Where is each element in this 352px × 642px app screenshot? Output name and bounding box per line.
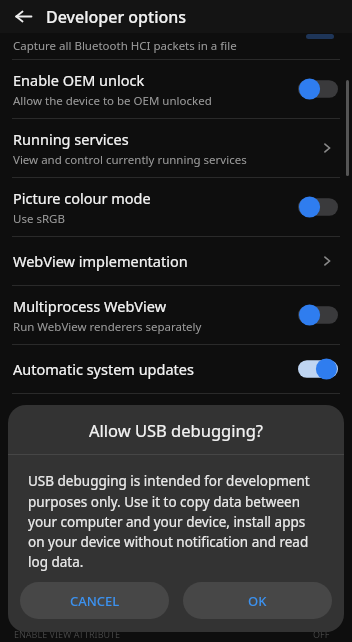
staticText: OFF (313, 628, 330, 640)
staticText: Capture all Bluetooth HCI packets in a f… (13, 38, 237, 54)
staticText: Run WebView renderers separately (13, 319, 202, 335)
button[interactable]: WebView implementation (0, 237, 352, 285)
staticText: OK (248, 592, 267, 610)
staticText: WebView implementation (13, 251, 188, 271)
button[interactable]: Back (6, 0, 40, 33)
staticText: Multiprocess WebView (13, 296, 167, 316)
staticText: ENABLE VIEW ATTRIBUTE (14, 628, 121, 640)
button[interactable]: Running services (0, 119, 352, 177)
staticText: Picture colour mode (13, 188, 151, 208)
button[interactable]: Enable OEM unlock (0, 60, 352, 118)
button[interactable]: Capture all Bluetooth HCI packets in a f… (0, 33, 352, 59)
staticText: Developer options (46, 6, 187, 28)
staticText: Use sRGB (13, 211, 65, 227)
staticText: CANCEL (70, 592, 120, 610)
staticText: USB debugging is intended for developmen… (28, 472, 324, 571)
staticText: Automatic system updates (13, 359, 194, 379)
button[interactable]: OK (183, 582, 332, 619)
staticText: View and control currently running servi… (13, 152, 247, 168)
button[interactable]: Toggle (298, 78, 338, 100)
button[interactable]: Toggle (298, 358, 338, 380)
button[interactable]: Toggle (298, 304, 338, 326)
button[interactable]: Toggle (298, 196, 338, 218)
staticText: Allow USB debugging? (8, 419, 344, 441)
staticText: Enable OEM unlock (13, 70, 145, 90)
button[interactable]: Multiprocess WebView (0, 286, 352, 344)
button[interactable]: Picture colour mode (0, 178, 352, 236)
staticText: Allow the device to be OEM unlocked (13, 93, 212, 109)
staticText: Running services (13, 129, 129, 149)
button[interactable]: CANCEL (20, 582, 169, 619)
button[interactable]: Demo mode (0, 394, 352, 442)
staticText: Demo mode (13, 408, 98, 428)
button[interactable]: Automatic system updates (0, 345, 352, 393)
